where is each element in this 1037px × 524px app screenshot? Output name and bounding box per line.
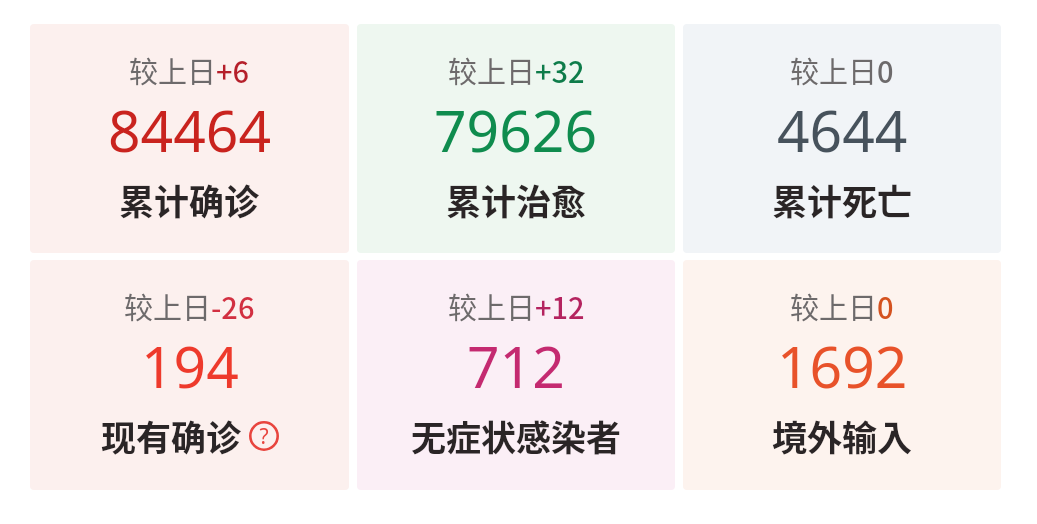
staticText: 现有确诊 <box>101 410 242 461</box>
staticText: 较上日+12 <box>448 285 585 327</box>
button[interactable]: About current confirmed cases <box>249 421 279 451</box>
staticText: 1692 <box>777 327 908 405</box>
staticText: 累计死亡 <box>772 174 913 225</box>
staticText: 境外输入 <box>772 410 913 461</box>
button[interactable]: 较上日+32 <box>357 24 675 253</box>
staticText: 194 <box>141 327 239 405</box>
button[interactable]: 较上日+6 <box>30 24 349 253</box>
staticText: 较上日+6 <box>129 49 250 91</box>
staticText: 较上日+32 <box>448 49 585 91</box>
staticText: 79626 <box>434 91 598 169</box>
button[interactable]: 较上日0 <box>683 260 1001 490</box>
staticText: 712 <box>467 327 565 405</box>
staticText: 84464 <box>108 91 272 169</box>
staticText: 累计确诊 <box>119 174 260 225</box>
staticText: 无症状感染者 <box>411 410 622 461</box>
staticText: 累计治愈 <box>446 174 587 225</box>
button[interactable]: 较上日0 <box>683 24 1001 253</box>
staticText: 较上日0 <box>790 285 894 327</box>
staticText: ? <box>259 422 269 451</box>
staticText: 较上日0 <box>790 49 894 91</box>
button[interactable]: 较上日+12 <box>357 260 675 490</box>
button[interactable]: 较上日-26 <box>30 260 349 490</box>
staticText: 4644 <box>777 91 908 169</box>
staticText: 较上日-26 <box>124 285 255 327</box>
